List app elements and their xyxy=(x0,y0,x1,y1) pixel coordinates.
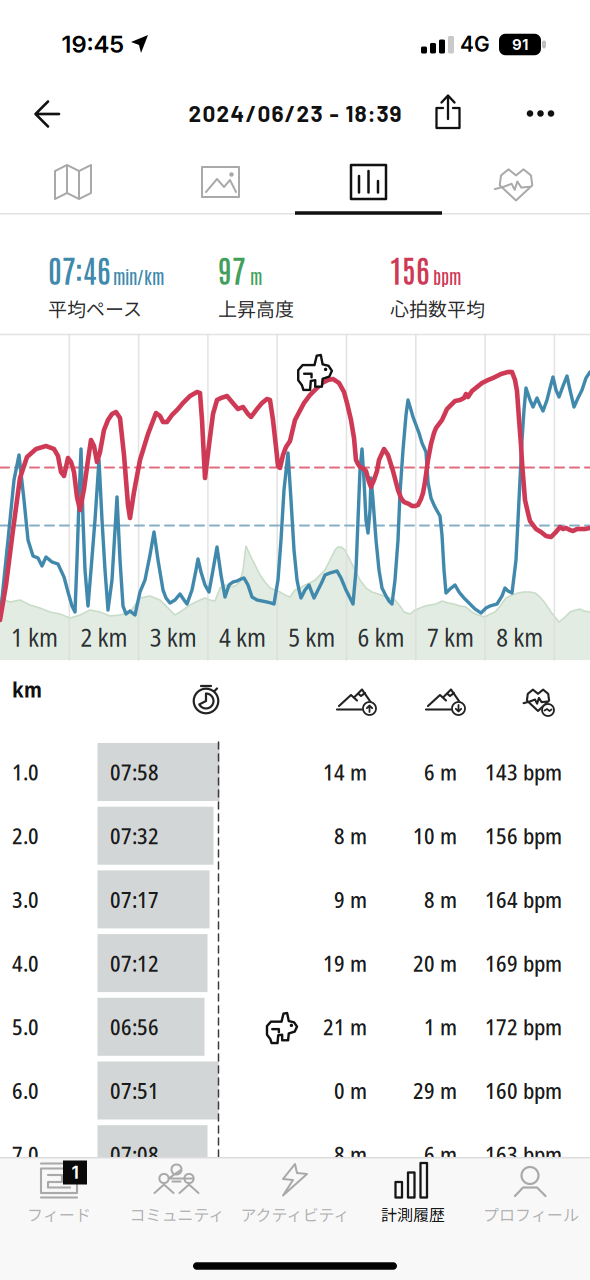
staticText: 19 m xyxy=(323,948,367,978)
staticText: 143 bpm xyxy=(485,757,562,787)
staticText: 163 bpm xyxy=(485,1139,562,1169)
staticText: 160 bpm xyxy=(485,1075,562,1105)
staticText: 5 km xyxy=(288,620,335,654)
staticText: 4 km xyxy=(219,620,266,654)
button[interactable]: Share xyxy=(0,0,590,1280)
staticText: 164 bpm xyxy=(485,884,562,914)
staticText: 2.0 xyxy=(12,821,39,851)
staticText: 3 km xyxy=(150,620,197,654)
staticText: 7.0 xyxy=(12,1139,39,1169)
staticText: 9 m xyxy=(334,884,367,914)
staticText: 8 km xyxy=(496,620,543,654)
staticText: 169 bpm xyxy=(485,948,562,978)
staticText: 5.0 xyxy=(12,1012,39,1042)
staticText: 3.0 xyxy=(12,884,39,914)
staticText: 07:46 xyxy=(48,249,111,289)
button[interactable]: 計測履歴 xyxy=(0,0,590,1280)
staticText: 06:56 xyxy=(110,1012,159,1042)
staticText: 8 m xyxy=(424,884,457,914)
staticText: 19:45 xyxy=(61,29,124,58)
staticText: 2 0 2 4 / 0 6 / 2 3 - 1 8 : 3 9 xyxy=(188,99,401,126)
staticText: bpm xyxy=(433,265,461,287)
staticText: 07:51 xyxy=(110,1075,159,1105)
button[interactable]: プロフィール xyxy=(0,0,590,1280)
staticText: km xyxy=(12,674,42,704)
staticText: プロフィール xyxy=(483,1202,579,1226)
staticText: 8 m xyxy=(334,1139,367,1169)
staticText: コミュニティ xyxy=(129,1202,224,1226)
staticText: 心拍数平均 xyxy=(390,294,485,322)
button[interactable]: フィード xyxy=(0,0,590,1280)
staticText: 91 xyxy=(512,35,528,53)
staticText: 6 m xyxy=(424,757,457,787)
button[interactable]: Map xyxy=(0,0,590,1280)
staticText: 1 xyxy=(71,1162,78,1183)
staticText: 07:58 xyxy=(110,757,159,787)
staticText: 4.0 xyxy=(12,948,39,978)
staticText: 07:12 xyxy=(110,948,159,978)
button[interactable]: Charts xyxy=(0,0,590,1280)
staticText: 20 m xyxy=(413,948,457,978)
staticText: 7 km xyxy=(427,620,474,654)
staticText: 6 m xyxy=(424,1139,457,1169)
button[interactable]: More xyxy=(0,0,590,1280)
staticText: フィード xyxy=(27,1202,91,1226)
staticText: 6.0 xyxy=(12,1075,39,1105)
staticText: 上昇高度 xyxy=(218,294,294,322)
staticText: 1.0 xyxy=(12,757,39,787)
staticText: 1 km xyxy=(11,620,58,654)
staticText: 8 m xyxy=(334,821,367,851)
staticText: 07:08 xyxy=(110,1139,159,1169)
staticText: 平均ペース xyxy=(48,294,142,322)
staticText: m xyxy=(250,265,262,287)
button[interactable]: Back xyxy=(0,0,590,1280)
staticText: 10 m xyxy=(413,821,457,851)
staticText: 97 xyxy=(218,249,246,289)
staticText: 計測履歴 xyxy=(381,1202,445,1226)
staticText: 07:32 xyxy=(110,821,159,851)
staticText: 6 km xyxy=(358,620,405,654)
staticText: 156 xyxy=(390,249,430,289)
staticText: 0 m xyxy=(334,1075,367,1105)
staticText: 21 m xyxy=(323,1012,367,1042)
button[interactable]: Heart rate xyxy=(0,0,590,1280)
staticText: 1 m xyxy=(424,1012,457,1042)
staticText: 07:17 xyxy=(110,884,159,914)
button[interactable]: コミュニティ xyxy=(0,0,590,1280)
staticText: 29 m xyxy=(413,1075,457,1105)
staticText: アクティビティ xyxy=(240,1202,349,1226)
button[interactable]: アクティビティ xyxy=(0,0,590,1280)
staticText: 172 bpm xyxy=(485,1012,562,1042)
staticText: 2 km xyxy=(80,620,127,654)
staticText: min/km xyxy=(113,265,164,287)
staticText: 156 bpm xyxy=(485,821,562,851)
staticText: 14 m xyxy=(323,757,367,787)
button[interactable]: Photos xyxy=(0,0,590,1280)
staticText: 4G xyxy=(460,31,490,57)
